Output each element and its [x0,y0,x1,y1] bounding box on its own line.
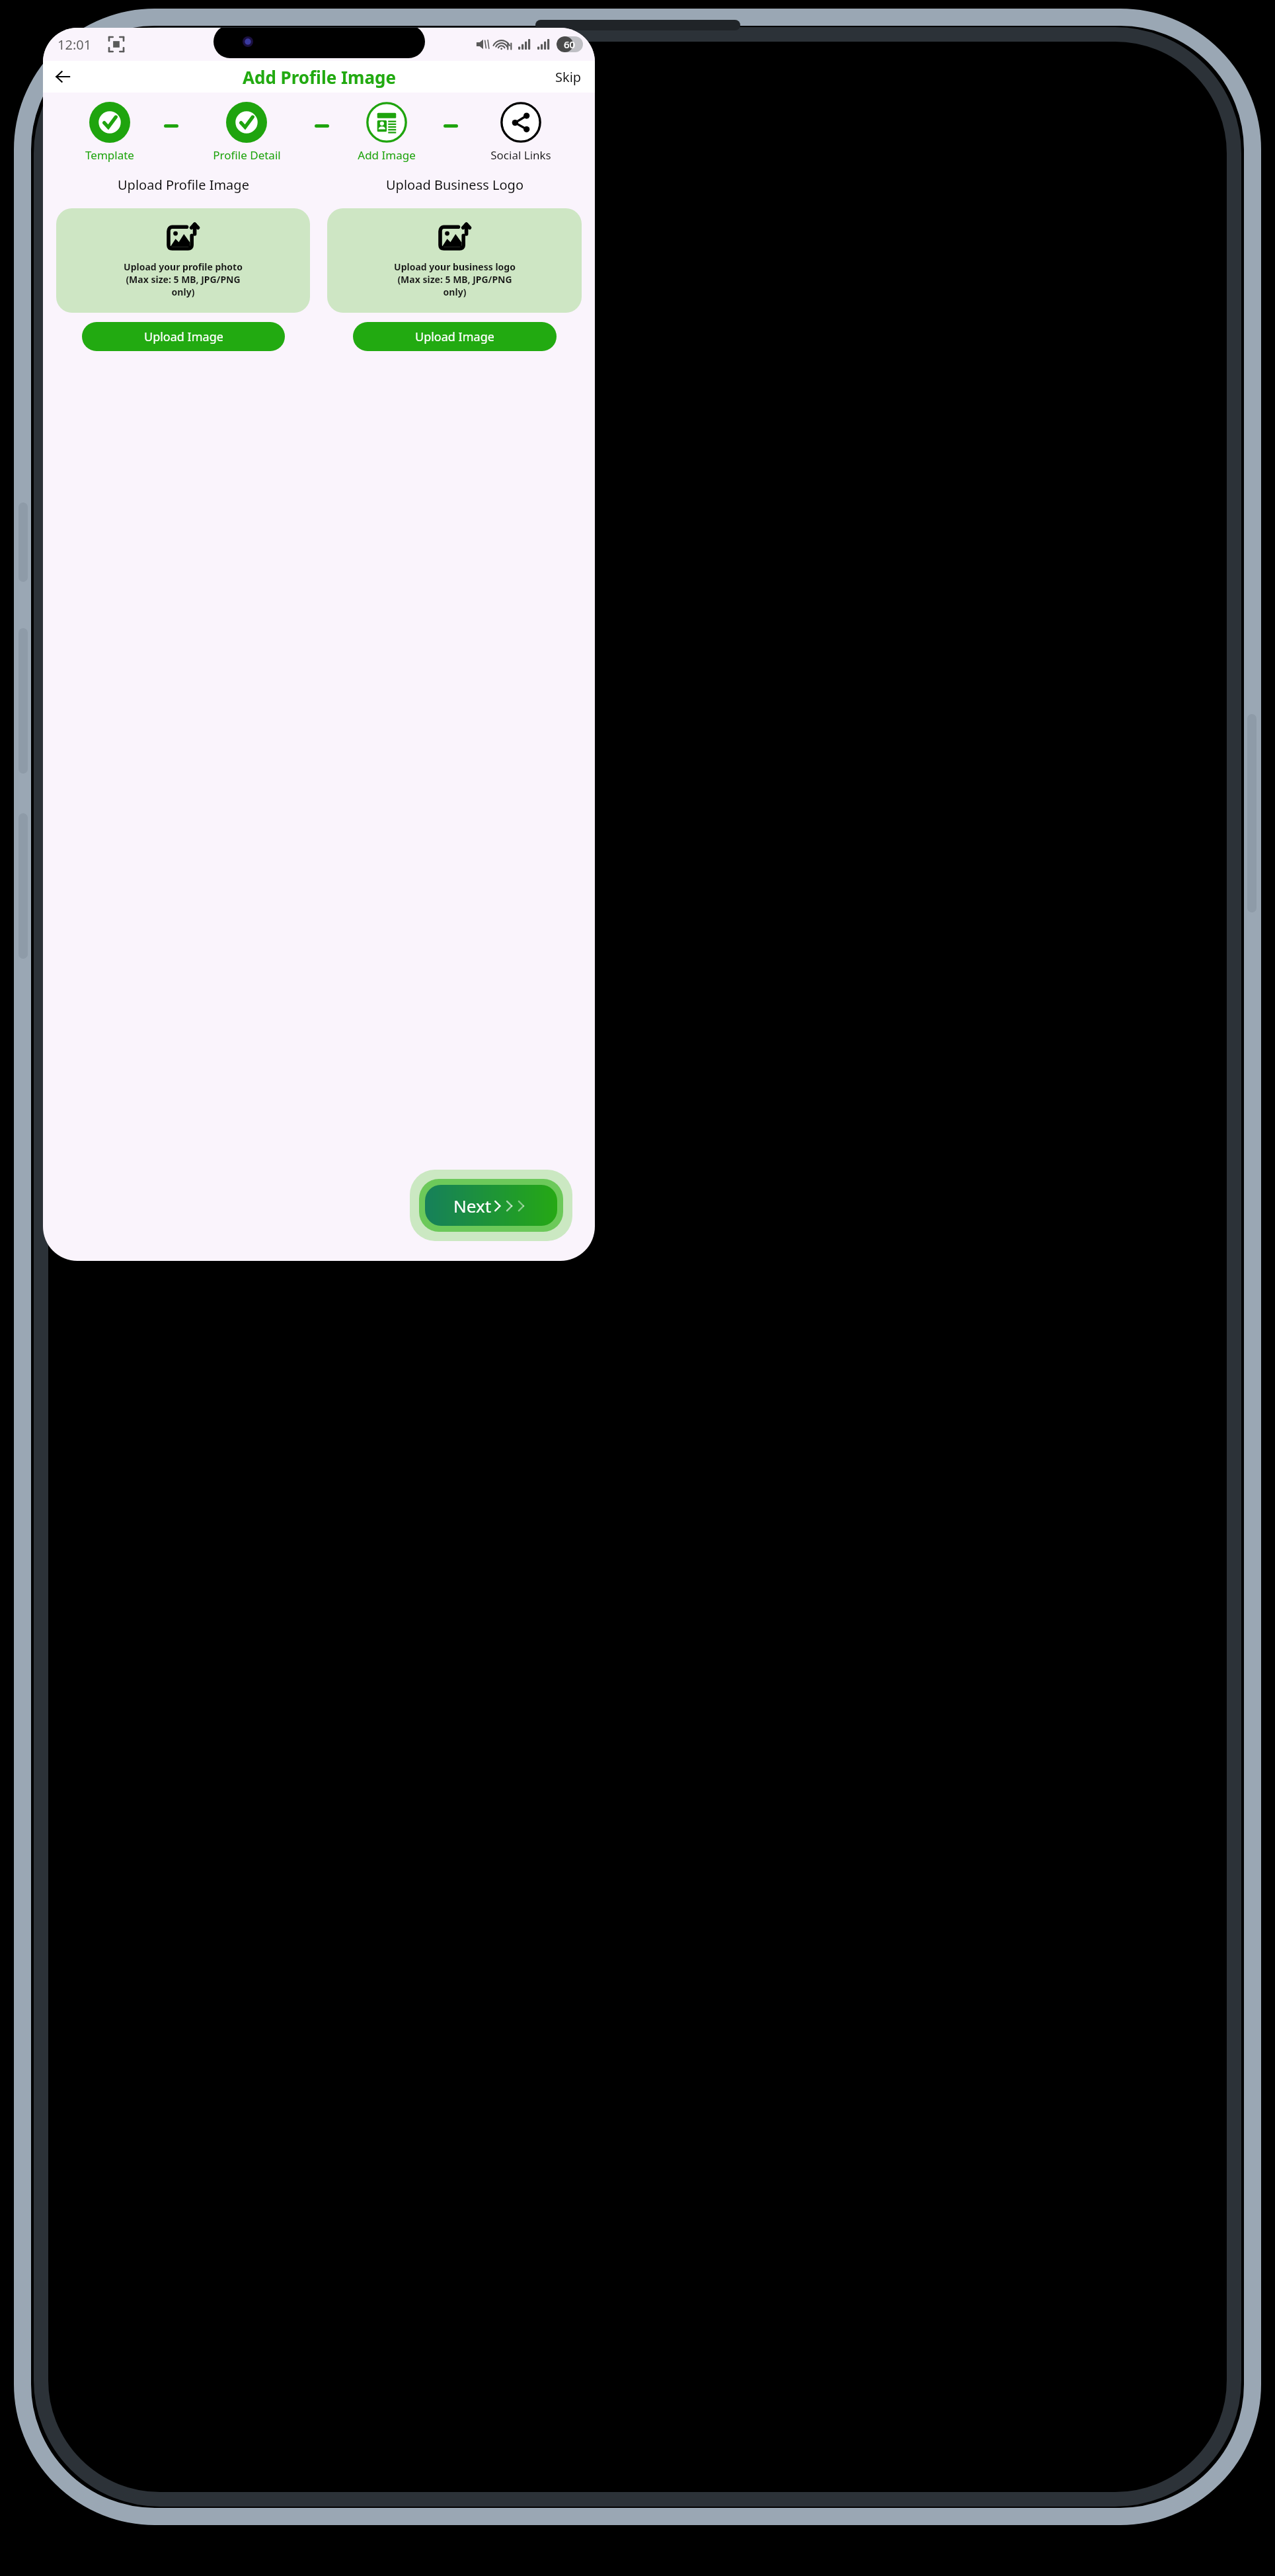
staticText: Upload Image [415,329,494,345]
staticText: Upload your profile photo (Max size: 5 M… [124,261,243,298]
button[interactable]: Template [55,102,164,163]
staticText: Upload Profile Image [118,176,249,194]
staticText: 12:01 [58,36,92,54]
staticText: Profile Detail [213,147,281,163]
button[interactable]: Back [48,62,77,91]
button[interactable]: Upload your business logo (Max size: 5 M… [327,208,582,313]
staticText: Social Links [490,147,551,163]
button[interactable]: Next [425,1185,557,1226]
staticText: Add Image [358,147,416,163]
button[interactable]: Upload your profile photo (Max size: 5 M… [56,208,310,313]
button[interactable]: Social Links [458,102,583,163]
staticText: 60 [564,38,576,51]
button[interactable]: Upload Image [82,322,285,351]
button[interactable]: Skip [551,64,586,90]
button[interactable]: Upload Image [353,322,557,351]
staticText: Upload your business logo (Max size: 5 M… [394,261,516,298]
staticText: Add Profile Image [243,65,396,89]
staticText: Next [453,1194,492,1217]
staticText: Upload Business Logo [386,176,523,194]
staticText: Template [85,147,134,163]
button[interactable]: Profile Detail [178,102,315,163]
button[interactable]: Add Image [329,102,444,163]
staticText: Upload Image [144,329,223,345]
staticText: Skip [555,68,582,86]
